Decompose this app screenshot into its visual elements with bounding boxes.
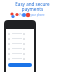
staticText: Pay with your phone — [19, 13, 45, 17]
button[interactable] — [6, 41, 34, 46]
button[interactable] — [6, 46, 34, 51]
staticText: Easy and secure payments — [15, 1, 50, 12]
button[interactable] — [6, 36, 34, 41]
button[interactable] — [6, 51, 34, 56]
button[interactable] — [6, 56, 34, 61]
button[interactable] — [6, 31, 34, 36]
button[interactable] — [8, 63, 32, 67]
